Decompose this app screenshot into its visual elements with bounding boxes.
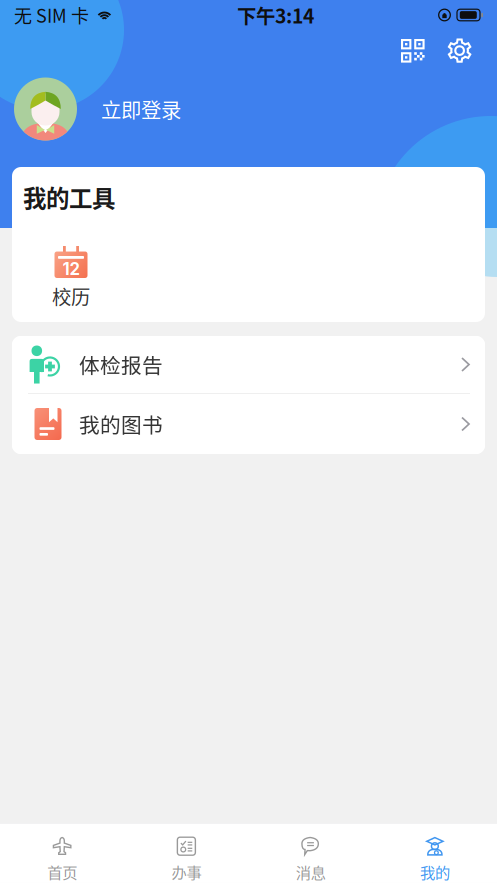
button[interactable]: 我的图书 [12,394,485,454]
button[interactable]: 设置 [447,38,472,63]
staticText: 12 [62,259,79,279]
staticText: 立即登录 [101,94,181,124]
staticText: 校历 [52,282,90,310]
button[interactable]: 办事 [124,824,248,883]
staticText: 办事 [171,861,201,883]
button[interactable]: 12 [37,246,105,308]
button[interactable]: 体检报告 [12,336,485,393]
button[interactable]: 我的 [373,824,497,883]
staticText: 我的工具 [23,180,115,214]
staticText: 体检报告 [79,349,163,379]
button[interactable]: 扫一扫 [401,39,425,63]
button[interactable]: 立即登录 [14,79,294,139]
staticText: 消息 [296,861,326,883]
staticText: 我的图书 [79,409,163,439]
staticText: 下午3:14 [237,1,314,29]
staticText: 我的 [420,861,450,883]
staticText: 首页 [47,861,77,883]
button[interactable]: 消息 [248,824,373,883]
staticText: 无 SIM 卡 [14,2,89,28]
button[interactable]: 首页 [0,824,124,883]
